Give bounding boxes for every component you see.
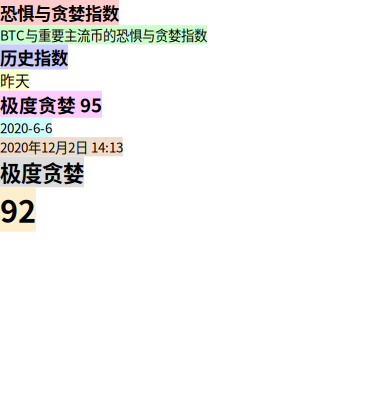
staticText: 2020-6-6 <box>0 118 52 137</box>
staticText: 极度贪婪 <box>0 156 84 187</box>
staticText: 2020年12月2日 14:13 <box>0 137 123 156</box>
staticText: BTC与重要主流币的恐惧与贪婪指数 <box>0 25 207 44</box>
staticText: 昨天 <box>0 69 30 91</box>
staticText: 极度贪婪 95 <box>0 91 102 118</box>
staticText: 恐惧与贪婪指数 <box>0 0 119 25</box>
staticText: 历史指数 <box>0 44 68 69</box>
staticText: 92 <box>0 187 36 232</box>
